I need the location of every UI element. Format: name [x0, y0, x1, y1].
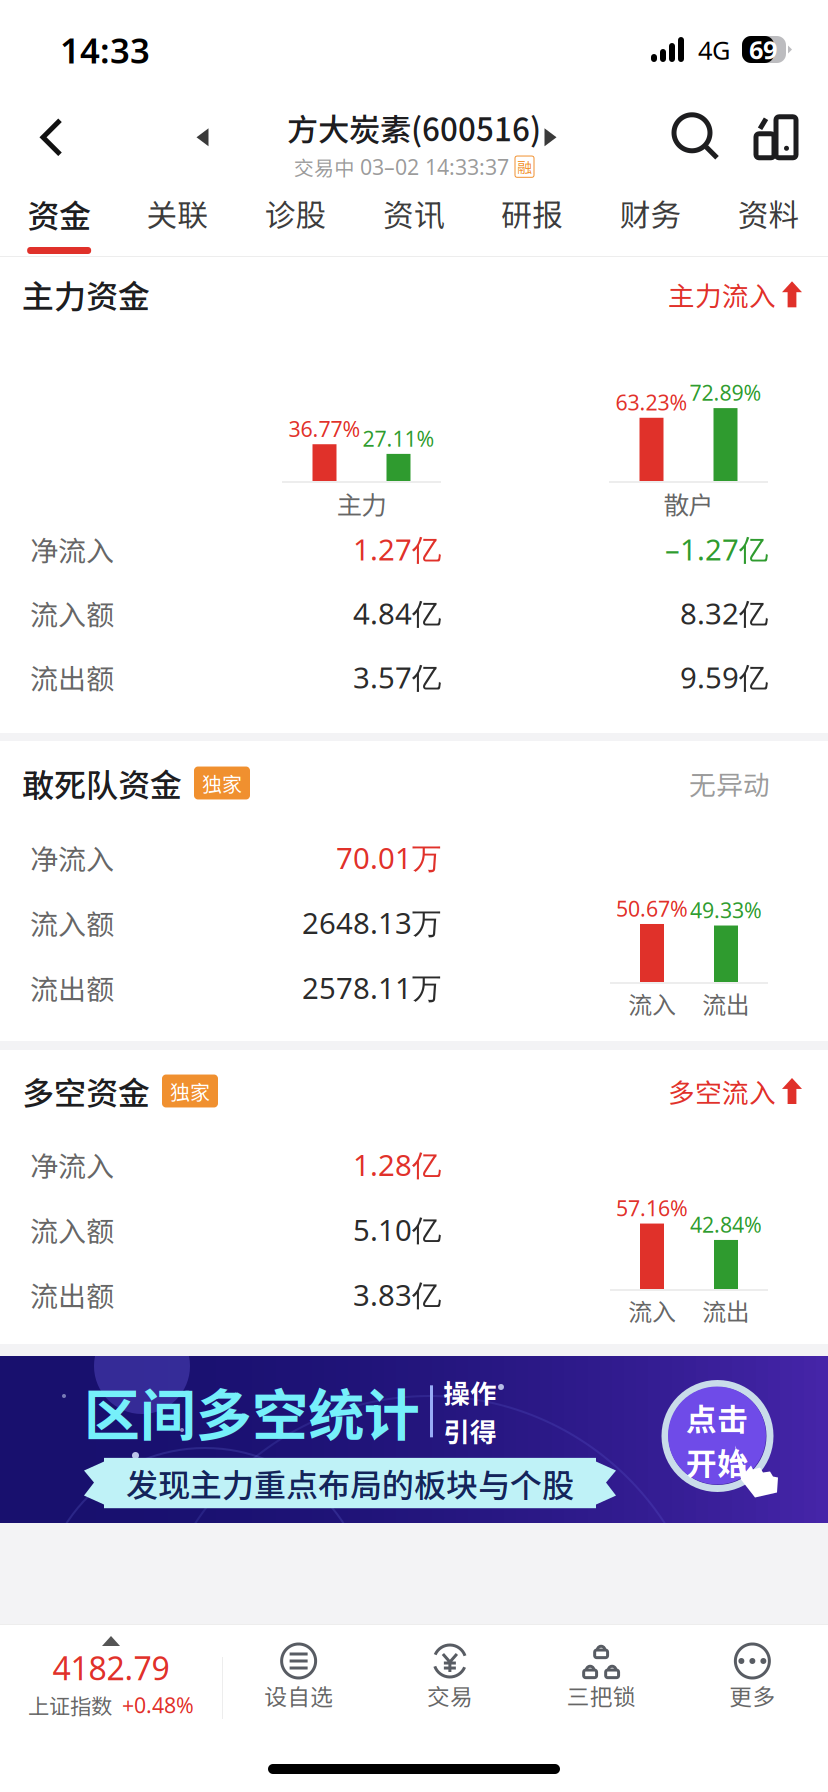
staticText: 诊股	[265, 191, 327, 235]
staticText: 4.84亿	[353, 593, 441, 633]
staticText: 资金	[27, 191, 91, 237]
staticText: 流出额	[30, 657, 114, 697]
staticText: 设自选	[264, 1679, 333, 1712]
staticText: 3.57亿	[353, 657, 441, 697]
staticText: 流出	[702, 986, 750, 1021]
staticText: 点击	[686, 1395, 748, 1439]
staticText: 研报	[501, 191, 563, 235]
staticText: 36.77%	[288, 414, 360, 443]
button[interactable]: 切换视图	[731, 95, 806, 180]
button[interactable]: 资讯	[355, 180, 473, 256]
staticText: 2578.11万	[302, 967, 441, 1007]
staticText: 敢死队资金	[22, 760, 182, 806]
staticText: 8.32亿	[680, 593, 768, 633]
staticText: 9.59亿	[680, 657, 768, 697]
button[interactable]: 资料	[710, 180, 828, 256]
button[interactable]: 财务	[591, 180, 710, 256]
button[interactable]: 返回	[12, 95, 91, 179]
staticText: 流入额	[30, 1209, 114, 1250]
staticText: 散户	[663, 485, 713, 522]
button[interactable]: 多空流入	[668, 1066, 802, 1116]
staticText: 4182.79	[52, 1646, 169, 1690]
staticText: 无异动	[689, 764, 770, 802]
button[interactable]: 上证指数 4182.79 +0.48%	[0, 1625, 222, 1751]
staticText: 49.33%	[690, 895, 762, 925]
button[interactable]: 资金	[0, 180, 118, 256]
button[interactable]: 下一只股票	[526, 95, 574, 179]
staticText: 净流入	[30, 837, 114, 878]
staticText: 流入额	[30, 593, 114, 633]
staticText: 流出	[702, 1293, 750, 1328]
staticText: 交易中	[294, 152, 354, 181]
button[interactable]: 关联	[118, 180, 237, 256]
staticText: 63.23%	[615, 388, 687, 417]
staticText: 独家	[202, 768, 242, 797]
button[interactable]: 上一只股票	[178, 95, 226, 179]
button[interactable]: 无异动	[689, 758, 770, 808]
staticText: 50.67%	[616, 894, 688, 923]
staticText: 03–02 14:33:37	[360, 152, 509, 181]
staticText: 净流入	[30, 529, 114, 569]
staticText: 交易	[427, 1679, 473, 1712]
staticText: 2648.13万	[302, 902, 441, 942]
staticText: 关联	[146, 191, 208, 235]
staticText: 流入	[628, 1293, 676, 1328]
staticText: 引得	[443, 1411, 497, 1450]
button[interactable]: 更多	[677, 1625, 828, 1751]
button[interactable]: 三把锁	[525, 1625, 677, 1751]
staticText: 4G	[698, 33, 730, 67]
button[interactable]: 搜索	[662, 95, 731, 180]
button[interactable]: 主力流入	[668, 269, 802, 320]
staticText: 69	[749, 33, 777, 66]
staticText: 27.11%	[362, 424, 434, 453]
staticText: –1.27亿	[665, 529, 768, 569]
button[interactable]: 区间多空统计 发现主力重点布局的板块与个股 广告	[0, 1356, 828, 1523]
button[interactable]: 研报	[473, 180, 591, 256]
staticText: 主力流入	[668, 275, 776, 314]
staticText: 72.89%	[689, 378, 761, 407]
staticText: 主力资金	[22, 271, 150, 317]
staticText: 更多	[729, 1679, 775, 1712]
staticText: 开始	[686, 1439, 748, 1484]
button[interactable]: 设自选	[223, 1625, 374, 1751]
staticText: 57.16%	[616, 1193, 688, 1223]
staticText: 流出额	[30, 967, 114, 1008]
staticText: 1.28亿	[353, 1144, 441, 1184]
staticText: 3.83亿	[353, 1274, 441, 1314]
staticText: 净流入	[30, 1144, 114, 1185]
staticText: 三把锁	[567, 1679, 636, 1712]
staticText: 1.27亿	[353, 529, 441, 569]
staticText: 流出额	[30, 1274, 114, 1315]
staticText: 流入	[628, 986, 676, 1021]
staticText: 操作	[443, 1373, 497, 1411]
staticText: 多空流入	[668, 1072, 776, 1110]
button[interactable]: 交易	[374, 1625, 525, 1751]
staticText: 多空资金	[22, 1068, 150, 1114]
staticText: +0.48%	[122, 1690, 194, 1720]
button[interactable]: 诊股	[237, 180, 355, 256]
staticText: 财务	[620, 191, 682, 235]
staticText: 独家	[170, 1076, 210, 1105]
staticText: 42.84%	[690, 1210, 762, 1239]
staticText: 发现主力重点布局的板块与个股	[126, 1460, 574, 1506]
staticText: 区间多空统计	[84, 1371, 420, 1452]
staticText: 14:33	[60, 27, 150, 73]
staticText: 融	[517, 156, 532, 177]
staticText: 资料	[738, 191, 800, 235]
staticText: 流入额	[30, 902, 114, 943]
staticText: 5.10亿	[353, 1209, 441, 1249]
staticText: 资讯	[383, 191, 445, 235]
staticText: 上证指数	[28, 1690, 112, 1720]
staticText: 方大炭素(600516)	[287, 105, 541, 150]
staticText: 70.01万	[336, 837, 441, 877]
staticText: 主力	[336, 485, 386, 522]
